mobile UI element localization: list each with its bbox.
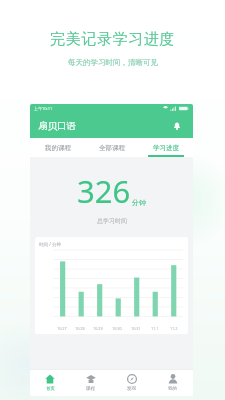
button[interactable]: 发现 (111, 369, 152, 396)
staticText: 11.2 (170, 326, 178, 331)
staticText: 首页 (46, 386, 55, 392)
button[interactable]: 首页 (30, 369, 70, 396)
staticText: 每天的学习时间，清晰可见 (68, 58, 158, 67)
staticText: 10.31 (131, 326, 141, 331)
button[interactable]: 课程 (70, 369, 111, 396)
button[interactable]: 我的 (152, 369, 193, 396)
staticText: 10.29 (93, 326, 103, 331)
staticText: 10.27 (57, 326, 67, 331)
staticText: 分钟 (132, 198, 146, 207)
button[interactable]: 学习进度 (139, 138, 193, 157)
button[interactable]: Notifications (169, 118, 185, 134)
staticText: 发现 (127, 386, 136, 392)
staticText: 时间 / 分钟 (39, 241, 62, 247)
button[interactable]: 我的课程 (30, 138, 85, 157)
staticText: 我的课程 (45, 144, 71, 152)
staticText: 完美记录学习进度 (50, 30, 175, 49)
staticText: 10.30 (112, 326, 122, 331)
button[interactable]: 全部课程 (85, 138, 139, 157)
staticText: 扇贝口语 (38, 120, 76, 132)
staticText: 全部课程 (99, 144, 125, 152)
staticText: 总学习时间 (97, 217, 127, 225)
staticText: 10.28 (75, 326, 85, 331)
staticText: 课程 (86, 386, 95, 392)
staticText: 11.1 (151, 326, 159, 331)
staticText: 上午10:11 (34, 106, 53, 111)
staticText: 学习进度 (153, 144, 179, 152)
staticText: 我的 (168, 386, 177, 392)
staticText: 326 (77, 170, 131, 212)
